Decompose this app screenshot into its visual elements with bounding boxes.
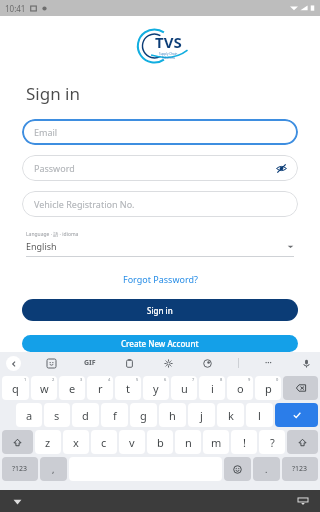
button[interactable]: Stickers [43,355,59,371]
button[interactable]: w [31,376,57,400]
button[interactable]: x [63,430,89,454]
staticText: h [169,408,176,423]
button[interactable]: Enter [275,403,318,427]
button[interactable]: Create New Account [22,335,298,352]
button[interactable]: q [2,376,29,400]
staticText: Forgot Password? [123,273,198,285]
button[interactable]: Show password [274,161,288,175]
staticText: k [228,408,234,423]
staticText: j [200,408,203,423]
staticText: w [40,381,49,396]
button[interactable]: ? [259,430,285,454]
button[interactable]: t [115,376,141,400]
staticText: Password [34,162,75,174]
staticText: Vehicle Registration No. [34,198,135,210]
staticText: TVS [155,32,182,52]
staticText: 7 [192,377,195,382]
staticText: Email [34,126,58,138]
staticText: n [185,435,192,450]
button[interactable]: Clipboard [121,355,137,371]
staticText: . [265,463,268,475]
staticText: e [69,381,76,396]
button[interactable]: More [262,356,275,370]
button[interactable]: i [199,376,225,400]
button[interactable]: l [246,403,273,427]
button[interactable]: o [227,376,253,400]
staticText: v [129,435,135,450]
staticText: 1 [24,377,27,382]
button[interactable]: Password [22,155,298,181]
button[interactable]: Forgot Password? [117,271,204,287]
staticText: r [98,381,103,396]
button[interactable]: Comma [40,457,67,481]
button[interactable]: Shift [2,430,33,454]
button[interactable]: Backspace [283,376,318,400]
staticText: ••• [265,359,272,367]
button[interactable]: a [16,403,42,427]
staticText: Sign in [26,82,80,105]
button[interactable]: c [91,430,117,454]
button[interactable]: GIF [81,355,99,371]
button[interactable]: Sign in [22,299,298,321]
staticText: z [45,435,51,450]
staticText: Create New Account [121,338,199,349]
staticText: 0 [276,377,279,382]
button[interactable]: n [175,430,201,454]
staticText: 5 [136,377,139,382]
staticText: a [26,408,33,423]
button[interactable]: f [101,403,128,427]
staticText: d [82,408,89,423]
button[interactable]: g [130,403,157,427]
button[interactable]: z [35,430,61,454]
staticText: 9 [248,377,251,382]
staticText: ! [243,435,246,450]
button[interactable]: v [119,430,145,454]
staticText: ? [270,435,275,450]
button[interactable]: e [59,376,85,400]
button[interactable]: Vehicle Registration No. [22,191,298,217]
staticText: y [153,381,159,396]
button[interactable]: Shift right [287,430,318,454]
button[interactable]: m [203,430,229,454]
staticText: ?123 [12,464,28,474]
button[interactable]: s [44,403,70,427]
button[interactable]: p [255,376,281,400]
staticText: 10:41 [5,3,26,14]
button[interactable]: u [171,376,197,400]
button[interactable]: b [147,430,173,454]
staticText: q [12,381,19,396]
staticText: ?123 [292,464,308,474]
button[interactable]: Voice input [298,355,314,371]
staticText: Solutions [162,56,176,60]
staticText: g [140,408,147,423]
staticText: t [126,381,130,396]
button[interactable]: r [87,376,113,400]
button[interactable]: Back [10,494,24,508]
button[interactable]: j [188,403,215,427]
staticText: l [258,408,261,423]
staticText: 6 [164,377,167,382]
button[interactable]: Period [253,457,280,481]
staticText: Language · 語 · idioma [26,231,79,238]
button[interactable]: ! [231,430,257,454]
button[interactable]: Back [6,356,21,371]
button[interactable]: k [217,403,244,427]
button[interactable]: Themes [199,355,215,371]
staticText: m [211,435,222,450]
button[interactable]: d [72,403,99,427]
staticText: GIF [84,358,96,368]
button[interactable]: Hide keyboard [296,494,310,508]
staticText: Supply Chain [159,52,178,56]
staticText: English [26,240,287,252]
button[interactable]: Settings [160,355,176,371]
button[interactable]: h [159,403,186,427]
button[interactable]: Emoji [224,457,251,481]
staticText: f [113,408,117,423]
button[interactable]: Symbols [2,457,38,481]
button[interactable]: Symbols right [282,457,318,481]
staticText: o [237,381,244,396]
button[interactable]: y [143,376,169,400]
button[interactable]: Email [22,119,298,145]
button[interactable]: Language · 語 · idioma [26,231,294,257]
